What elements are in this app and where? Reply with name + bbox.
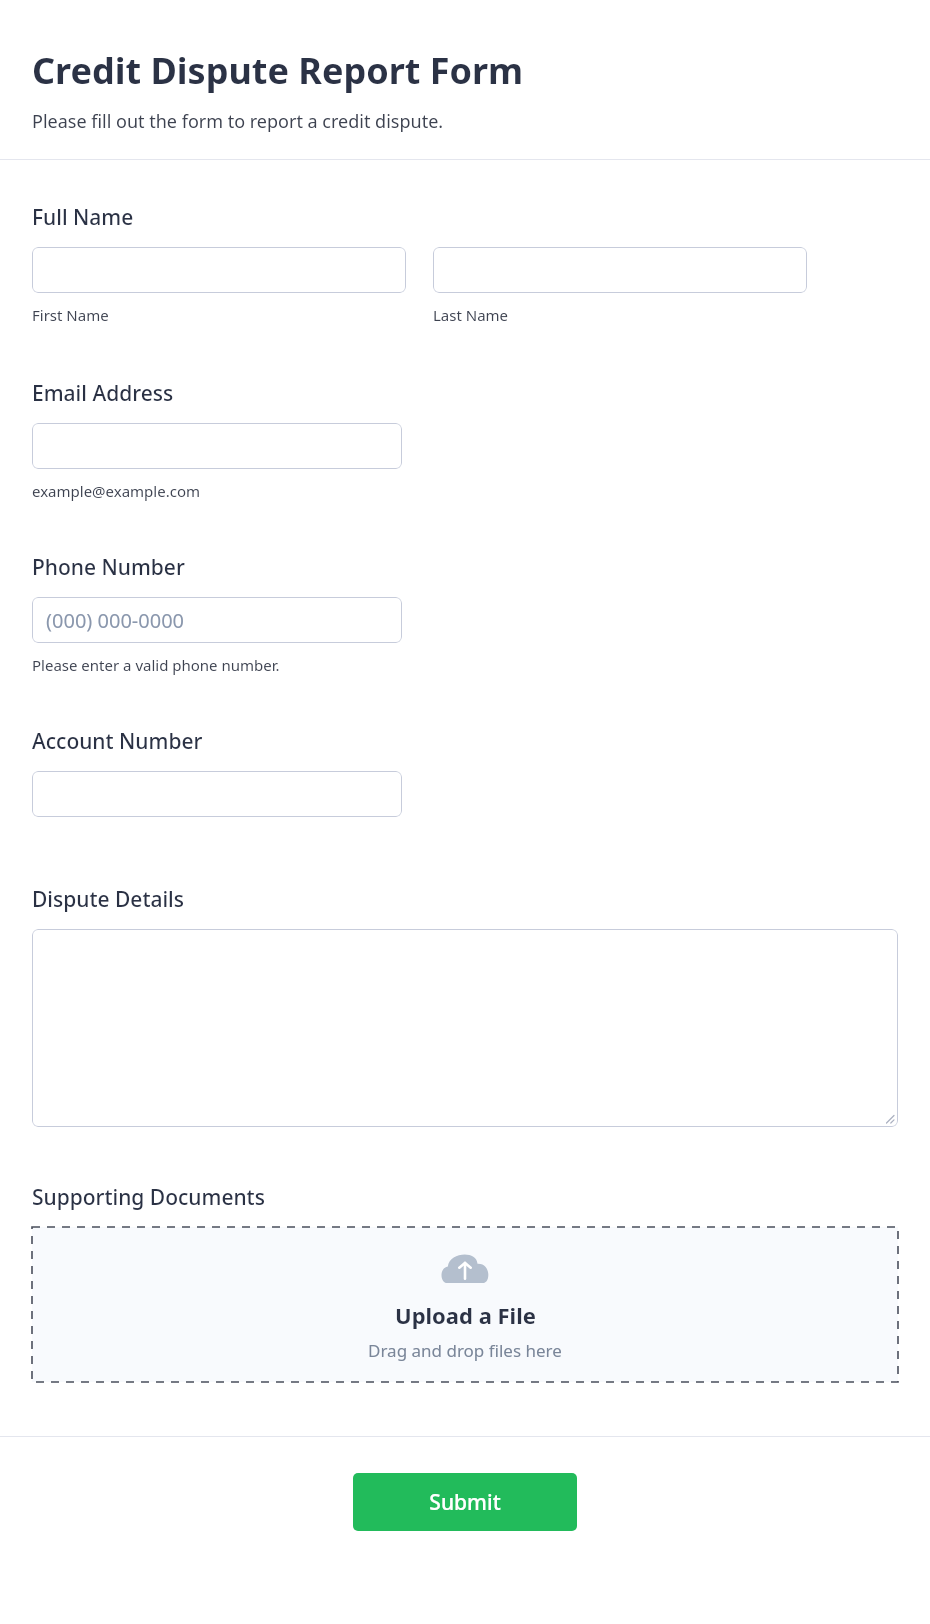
staticText: Supporting Documents	[32, 1183, 265, 1212]
button[interactable]	[433, 247, 807, 293]
button[interactable]	[32, 929, 898, 1127]
staticText: Please enter a valid phone number.	[32, 655, 280, 675]
button[interactable]: (000) 000-0000	[32, 597, 402, 643]
staticText: Drag and drop files here	[368, 1339, 562, 1362]
button[interactable]: Upload a File	[32, 1227, 898, 1382]
staticText: example@example.com	[32, 481, 200, 501]
staticText: Submit	[429, 1488, 501, 1517]
staticText: Account Number	[32, 727, 203, 756]
button[interactable]	[32, 247, 406, 293]
button[interactable]	[32, 771, 402, 817]
staticText: First Name	[32, 305, 109, 325]
staticText: (000) 000-0000	[46, 607, 185, 634]
staticText: Full Name	[32, 203, 134, 232]
staticText: Dispute Details	[32, 885, 184, 914]
button[interactable]: Submit	[353, 1473, 577, 1531]
staticText: Phone Number	[32, 553, 185, 582]
staticText: Upload a File	[395, 1300, 536, 1330]
staticText: Please fill out the form to report a cre…	[32, 109, 444, 134]
button[interactable]	[32, 423, 402, 469]
staticText: Email Address	[32, 379, 174, 408]
staticText: Credit Dispute Report Form	[32, 46, 524, 95]
staticText: Last Name	[433, 305, 509, 325]
